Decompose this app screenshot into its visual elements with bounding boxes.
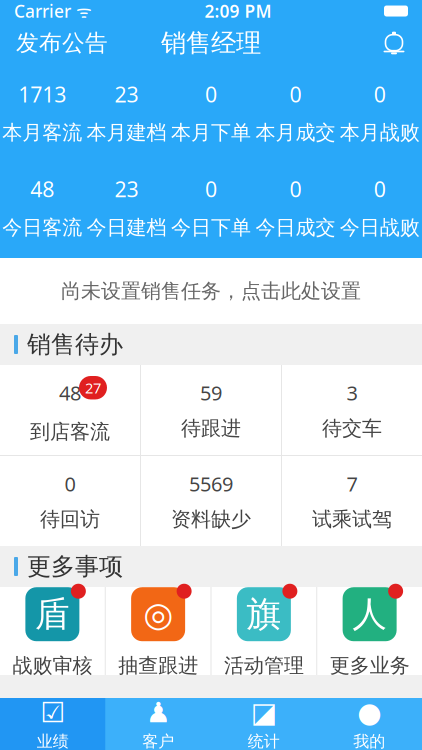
staticText: 到店客流	[30, 419, 110, 444]
staticText: 今日成交	[255, 215, 335, 240]
staticText: 销售待办	[27, 330, 123, 359]
staticText: 5569	[189, 470, 233, 497]
staticText: 23	[115, 175, 139, 203]
button[interactable]: 48	[0, 173, 84, 242]
button[interactable]: ♟	[105, 698, 211, 750]
button[interactable]: 48	[0, 365, 140, 455]
staticText: ♟	[146, 697, 171, 729]
button[interactable]: 尚未设置销售任务，点击此处设置	[0, 258, 422, 324]
staticText: 发布公告	[16, 29, 108, 57]
button[interactable]: ☑	[0, 698, 105, 750]
staticText: 23	[115, 80, 139, 108]
staticText: 客户	[142, 732, 174, 750]
staticText: 抽查跟进	[118, 653, 198, 678]
button[interactable]: 3	[282, 365, 422, 455]
staticText: 59	[200, 379, 222, 406]
staticText: 活动管理	[224, 653, 304, 678]
button[interactable]: 1713	[0, 78, 84, 147]
button[interactable]: 5569	[141, 456, 281, 546]
staticText: 本月成交	[255, 120, 335, 145]
staticText: 48	[59, 379, 81, 406]
staticText: 0	[205, 175, 217, 203]
button[interactable]: 23	[84, 173, 169, 242]
button[interactable]: Notifications	[366, 23, 422, 63]
button[interactable]: 0	[169, 173, 253, 242]
staticText: 今日建档	[87, 215, 167, 240]
staticText: 尚未设置销售任务，点击此处设置	[61, 279, 361, 303]
button[interactable]: 0	[169, 78, 253, 147]
button[interactable]: 人	[317, 587, 422, 675]
staticText: 旗	[246, 593, 281, 635]
staticText: 本月建档	[87, 120, 167, 145]
button[interactable]: ●	[316, 698, 422, 750]
button[interactable]: 旗	[211, 587, 316, 675]
button[interactable]: 23	[84, 78, 169, 147]
staticText: 0	[289, 80, 301, 108]
staticText: 本月战败	[340, 120, 420, 145]
staticText: 试乘试驾	[312, 507, 392, 532]
staticText: 战败审核	[12, 653, 92, 678]
staticText: 待交车	[322, 416, 382, 441]
staticText: 3	[346, 379, 357, 406]
staticText: 48	[30, 175, 54, 203]
staticText: 资料缺少	[171, 507, 251, 532]
staticText: 盾	[35, 593, 70, 635]
staticText: 今日客流	[2, 215, 82, 240]
staticText: ●	[357, 697, 381, 729]
button[interactable]: 盾	[0, 587, 105, 675]
button[interactable]: 0	[253, 173, 338, 242]
staticText: 待跟进	[181, 416, 241, 441]
staticText: 27	[85, 378, 101, 397]
button[interactable]: 0	[338, 173, 422, 242]
button[interactable]: 0	[253, 78, 338, 147]
button[interactable]: ◪	[211, 698, 316, 750]
staticText: 7	[346, 470, 357, 497]
staticText: 本月客流	[2, 120, 82, 145]
staticText: 统计	[248, 732, 280, 750]
button[interactable]: ◎	[106, 587, 211, 675]
staticText: ☑	[40, 697, 65, 729]
staticText: 今日下单	[171, 215, 251, 240]
staticText: 本月下单	[171, 120, 251, 145]
staticText: 1713	[18, 80, 66, 108]
staticText: 我的	[353, 732, 385, 750]
staticText: 业绩	[37, 732, 69, 750]
staticText: 更多业务	[330, 653, 410, 678]
staticText: 更多事项	[27, 552, 123, 581]
staticText: ◎	[143, 594, 173, 634]
staticText: 2:09 PM	[204, 0, 271, 22]
staticText: 0	[289, 175, 301, 203]
staticText: ᯤ	[71, 0, 92, 22]
staticText: 待回访	[40, 507, 100, 532]
button[interactable]: 59	[141, 365, 281, 455]
staticText: 人	[352, 593, 387, 635]
button[interactable]: 0	[338, 78, 422, 147]
staticText: Carrier	[14, 0, 71, 22]
button[interactable]: 发布公告	[0, 21, 124, 65]
staticText: 0	[374, 80, 386, 108]
staticText: 0	[374, 175, 386, 203]
button[interactable]: 0	[0, 456, 140, 546]
staticText: ◪	[251, 697, 277, 729]
staticText: 今日战败	[340, 215, 420, 240]
button[interactable]: 7	[282, 456, 422, 546]
staticText: 销售经理	[161, 27, 261, 58]
staticText: 0	[205, 80, 217, 108]
staticText: 0	[64, 470, 75, 497]
